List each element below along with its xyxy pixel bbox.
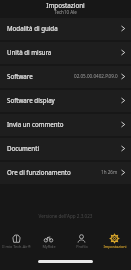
button[interactable]: Software — [0, 66, 131, 88]
staticText: Software — [7, 72, 33, 80]
button[interactable]: Modalità di guida — [0, 18, 131, 40]
button[interactable]: Invia un commento — [0, 114, 131, 136]
button[interactable]: Documenti — [0, 138, 131, 160]
staticText: Documenti — [7, 144, 39, 152]
button[interactable]: MyRide — [32, 233, 65, 249]
staticText: Invia un commento — [7, 120, 64, 128]
button[interactable]: Ore di funzionamento — [0, 162, 131, 184]
staticText: 1h 26m — [101, 169, 118, 175]
staticText: Tech10 Ale — [0, 9, 131, 15]
button[interactable]: Il mio Tech-Air® — [0, 233, 32, 249]
staticText: Versione dell'App 2.3.023 — [0, 213, 131, 219]
staticText: Profilo — [76, 244, 88, 249]
staticText: Impostazioni — [0, 1, 131, 10]
staticText: 02.05.00.0402.P.09.0 — [74, 73, 118, 79]
staticText: Impostazioni — [103, 244, 127, 249]
button[interactable]: Software display — [0, 90, 131, 112]
staticText: Unità di misura — [7, 48, 52, 56]
button[interactable]: Profilo — [65, 233, 98, 249]
staticText: MyRide — [42, 244, 56, 249]
staticText: Software display — [7, 96, 55, 104]
button[interactable]: Impostazioni — [98, 233, 131, 249]
button[interactable]: Unità di misura — [0, 42, 131, 64]
staticText: Modalità di guida — [7, 24, 58, 32]
staticText: Il mio Tech-Air® — [2, 244, 31, 249]
staticText: Ore di funzionamento — [7, 168, 71, 176]
